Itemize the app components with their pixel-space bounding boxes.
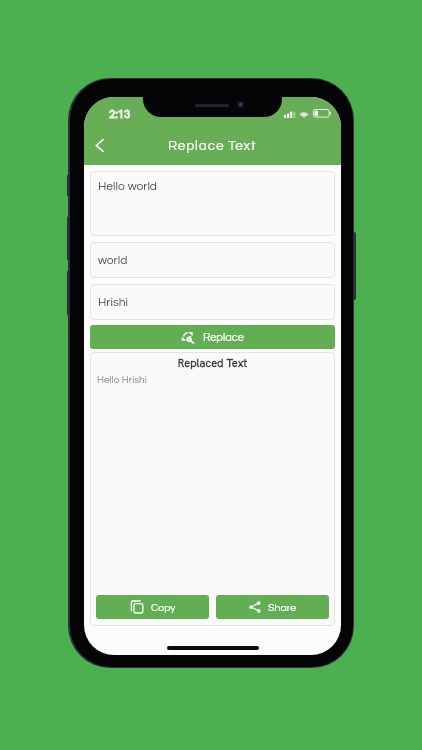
button[interactable]: Back: [84, 125, 114, 165]
staticText: world: [98, 254, 128, 266]
staticText: Replace: [203, 332, 244, 343]
staticText: Replace Text: [168, 139, 257, 153]
staticText: 2:13: [109, 107, 131, 121]
staticText: Share: [268, 602, 296, 613]
button[interactable]: Share: [216, 595, 329, 619]
button[interactable]: Copy: [96, 595, 209, 619]
button[interactable]: Replace: [90, 325, 335, 349]
staticText: Hrishi: [98, 296, 129, 308]
staticText: Hello Hrishi: [97, 375, 147, 385]
staticText: Hello world: [98, 180, 157, 192]
staticText: Replaced Text: [90, 356, 335, 370]
staticText: Copy: [151, 602, 176, 613]
